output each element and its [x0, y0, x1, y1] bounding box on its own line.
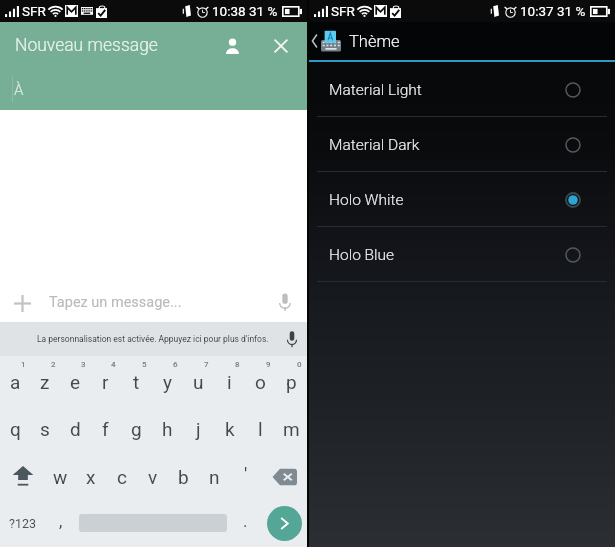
staticText: h — [162, 418, 173, 440]
button[interactable]: v — [137, 451, 168, 499]
button[interactable]: k — [214, 403, 245, 451]
staticText: l — [258, 418, 263, 440]
button[interactable]: Maj — [0, 451, 45, 499]
button[interactable]: n — [199, 451, 230, 499]
button[interactable]: 5 — [121, 356, 152, 403]
staticText: 3 — [81, 360, 86, 369]
button[interactable]: ?123 — [0, 499, 45, 547]
staticText: SFR — [331, 3, 355, 19]
staticText: g — [131, 418, 142, 440]
button[interactable]: x — [75, 451, 106, 499]
staticText: 10:38 — [212, 3, 246, 19]
button[interactable]: Holo White — [309, 172, 615, 227]
button[interactable]: f — [90, 403, 121, 451]
staticText: 7 — [204, 360, 209, 369]
staticText: n — [209, 466, 220, 488]
staticText: 6 — [173, 360, 178, 369]
staticText: a — [10, 371, 21, 393]
staticText: , — [59, 511, 63, 531]
staticText: 8 — [235, 360, 240, 369]
staticText: r — [102, 371, 109, 393]
staticText: . — [243, 511, 248, 531]
button[interactable]: 9 — [245, 356, 276, 403]
button[interactable]: b — [168, 451, 199, 499]
button[interactable]: Fermer — [255, 22, 307, 69]
button[interactable]: 6 — [152, 356, 183, 403]
button[interactable]: 2 — [30, 356, 60, 403]
staticText: Nouveau message — [15, 35, 209, 56]
staticText: f — [102, 418, 109, 440]
button[interactable]: s — [30, 403, 60, 451]
staticText: ?123 — [9, 516, 36, 531]
staticText: Material Light — [329, 81, 422, 99]
button[interactable]: Contacts — [209, 22, 255, 69]
staticText: 4 — [111, 360, 116, 369]
button[interactable]: Supprimer — [261, 451, 307, 499]
button[interactable]: Ajouter — [0, 284, 44, 322]
button[interactable]: Micro — [263, 283, 307, 322]
staticText: 0 — [297, 360, 302, 369]
staticText: t — [133, 371, 140, 393]
staticText: q — [10, 418, 21, 440]
button[interactable]: 8 — [214, 356, 245, 403]
staticText: u — [193, 371, 204, 393]
staticText: w — [53, 466, 68, 488]
button[interactable]: m — [276, 403, 307, 451]
staticText: k — [225, 418, 235, 440]
button[interactable]: Retour — [309, 26, 343, 56]
staticText: d — [70, 418, 81, 440]
staticText: m — [283, 418, 300, 440]
staticText: i — [227, 371, 232, 393]
staticText: y — [163, 371, 172, 393]
button[interactable]: Material Light — [309, 62, 615, 117]
button[interactable]: g — [121, 403, 152, 451]
button[interactable]: Material Dark — [309, 117, 615, 172]
staticText: b — [178, 466, 189, 488]
button[interactable]: l — [245, 403, 276, 451]
staticText: Holo White — [329, 191, 404, 209]
button[interactable]: w — [45, 451, 75, 499]
button[interactable]: d — [60, 403, 90, 451]
button[interactable]: q — [0, 403, 30, 451]
staticText: 1 — [21, 360, 26, 369]
staticText: Thème — [349, 32, 400, 51]
staticText: La personnalisation est activée. Appuyez… — [37, 334, 269, 344]
staticText: e — [70, 371, 81, 393]
staticText: p — [286, 371, 297, 393]
button[interactable]: . — [230, 499, 261, 547]
staticText: ' — [244, 463, 248, 485]
staticText: c — [117, 466, 127, 488]
button[interactable]: 0 — [276, 356, 307, 403]
staticText: Holo Blue — [329, 246, 395, 264]
button[interactable]: 1 — [0, 356, 30, 403]
button[interactable]: Envoyer — [261, 499, 307, 547]
button[interactable]: h — [152, 403, 183, 451]
staticText: x — [86, 466, 96, 488]
staticText: 2 — [51, 360, 56, 369]
staticText: 31 % — [557, 3, 586, 19]
button[interactable]: j — [183, 403, 214, 451]
button[interactable]: 3 — [60, 356, 90, 403]
staticText: À — [14, 81, 24, 99]
staticText: Material Dark — [329, 136, 420, 154]
button[interactable]: 7 — [183, 356, 214, 403]
staticText: 10:37 — [520, 3, 554, 19]
staticText: 5 — [142, 360, 147, 369]
button[interactable]: ' — [230, 451, 261, 499]
staticText: 31 % — [249, 3, 278, 19]
button[interactable]: c — [106, 451, 137, 499]
button[interactable]: Micro — [277, 324, 307, 354]
button[interactable]: Holo Blue — [309, 227, 615, 282]
button[interactable]: , — [45, 499, 76, 547]
staticText: Tapez un message... — [49, 294, 263, 311]
staticText: o — [255, 371, 266, 393]
staticText: v — [148, 466, 158, 488]
button[interactable]: 4 — [90, 356, 121, 403]
staticText: j — [196, 418, 201, 440]
staticText: SFR — [22, 3, 46, 19]
button[interactable] — [76, 499, 230, 547]
staticText: 9 — [266, 360, 271, 369]
staticText: z — [40, 371, 50, 393]
staticText: s — [40, 418, 50, 440]
